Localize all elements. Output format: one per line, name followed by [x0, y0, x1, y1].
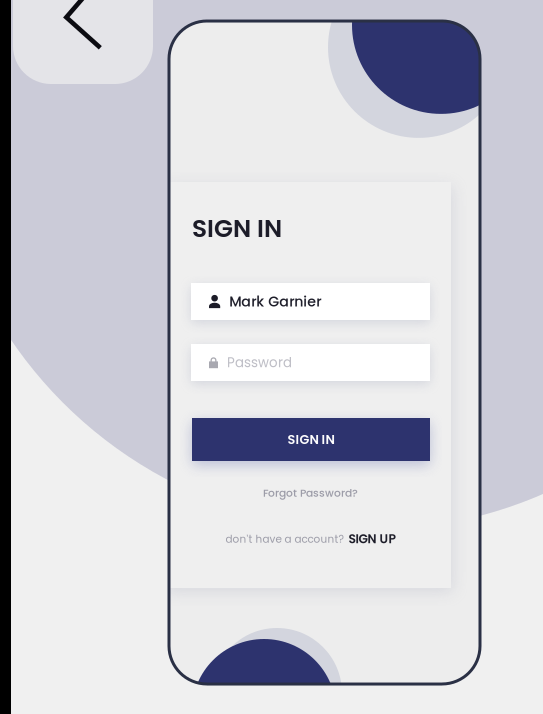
staticText: SIGN IN [287, 430, 334, 448]
button[interactable]: Back [13, 0, 153, 84]
button[interactable]: SIGN IN [192, 418, 430, 461]
staticText: SIGN UP [348, 530, 395, 548]
staticText: Forgot Password? [263, 485, 358, 500]
staticText: Mark Garnier [229, 292, 321, 311]
staticText: SIGN IN [192, 211, 282, 245]
staticText: don't have a account? [225, 532, 343, 546]
button[interactable]: don't have a account? [191, 531, 430, 547]
button[interactable]: Forgot Password? [191, 485, 430, 501]
staticText: Password [227, 353, 292, 372]
